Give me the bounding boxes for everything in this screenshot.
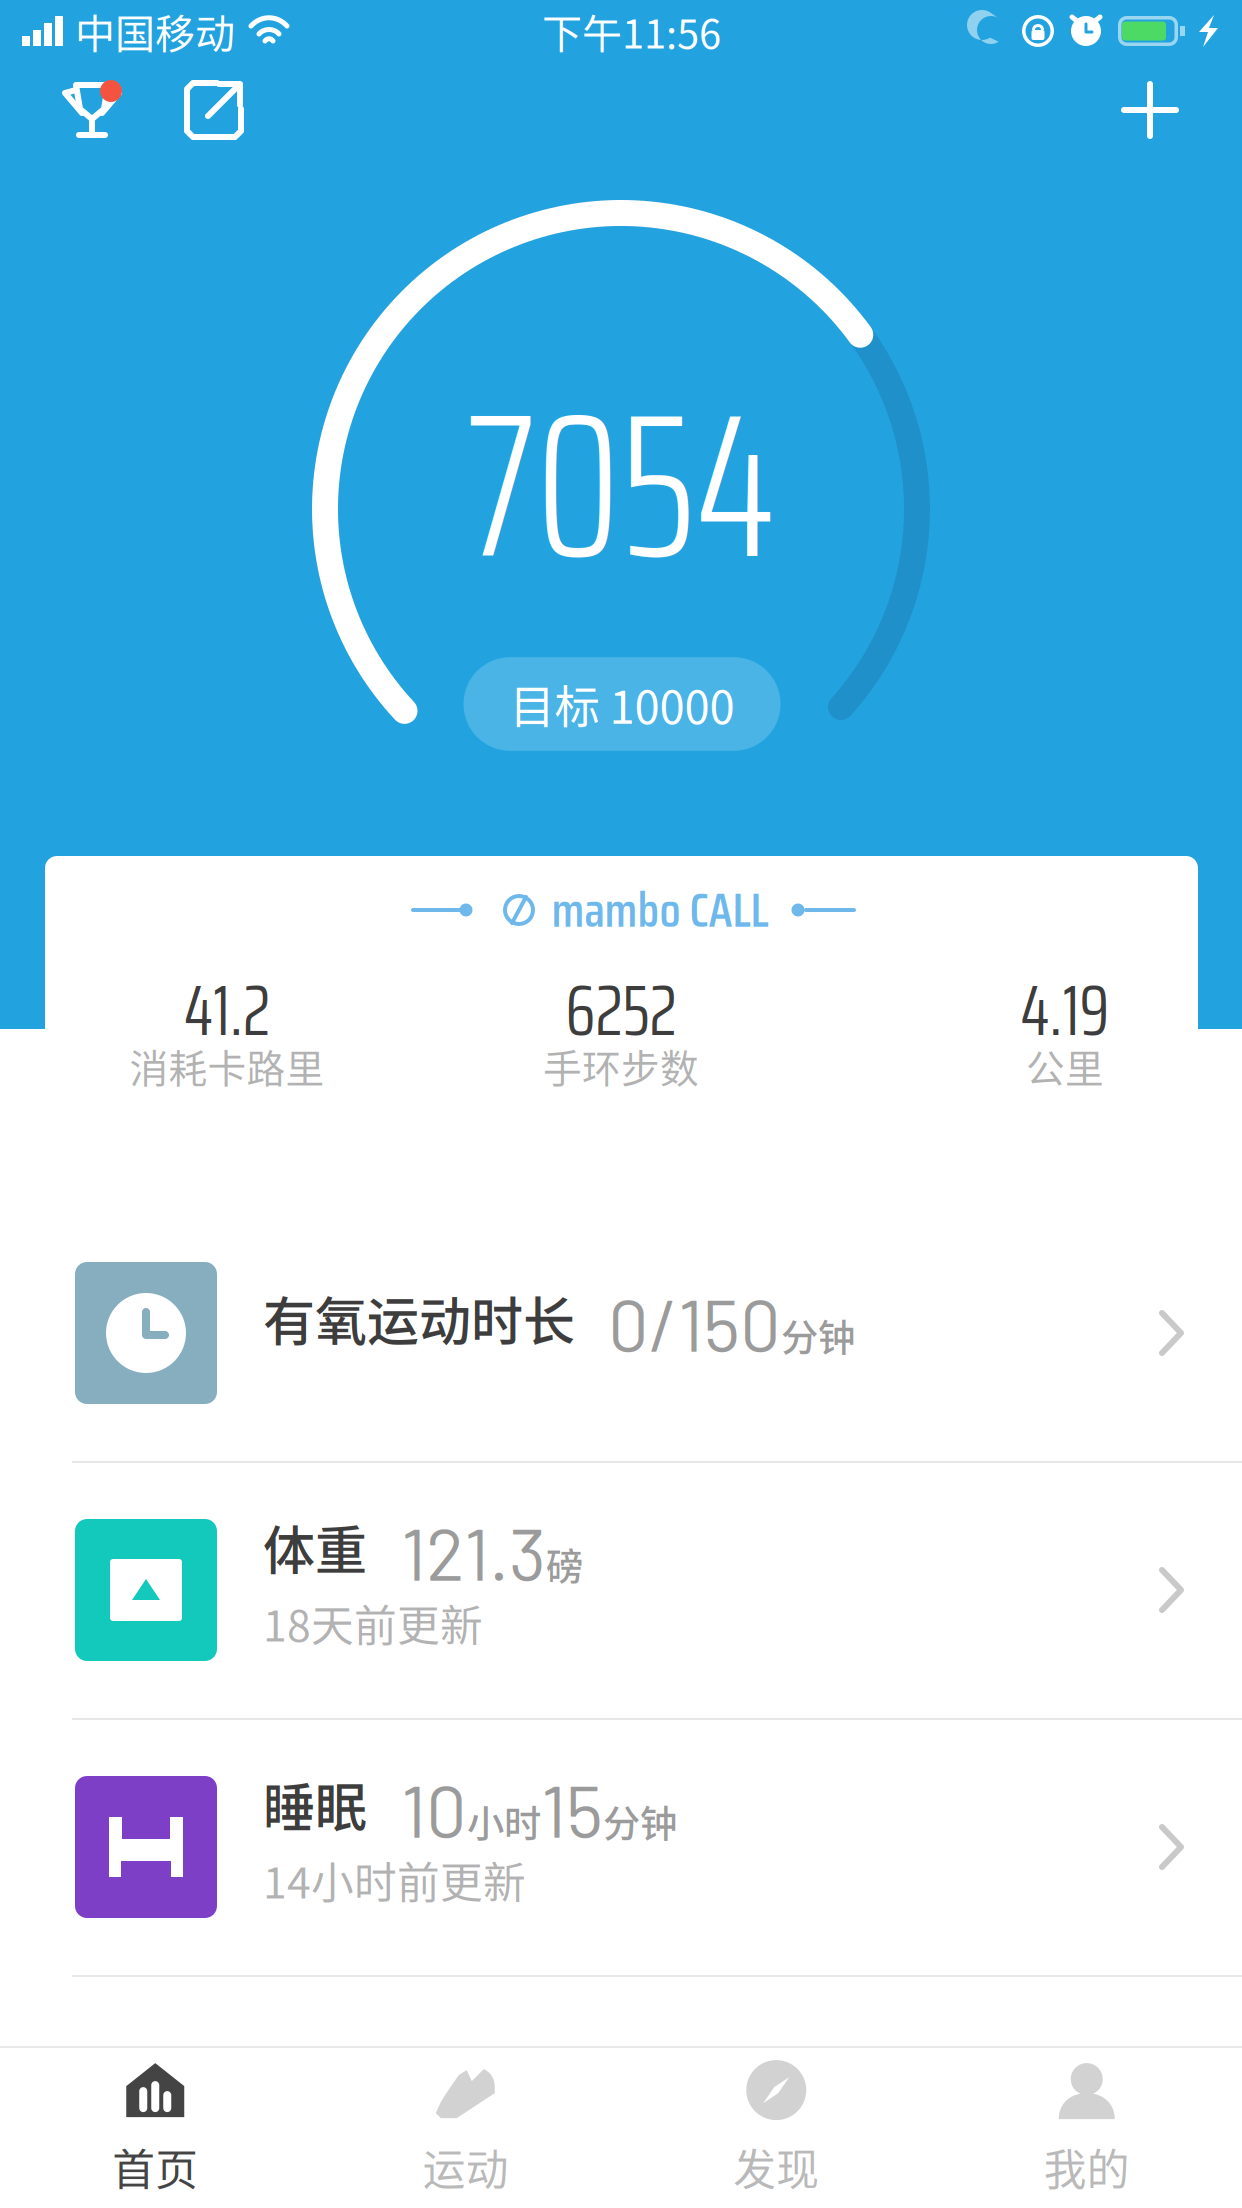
staticText: 18天前更新 <box>263 1592 483 1654</box>
staticText: 分钟 <box>781 1308 855 1363</box>
button[interactable]: Add <box>1102 62 1198 158</box>
staticText: mambo CALL <box>551 872 768 948</box>
staticText: 14小时前更新 <box>263 1849 526 1911</box>
staticText: 我的 <box>1044 2136 1130 2198</box>
staticText: 41.2 <box>184 953 270 1067</box>
button[interactable]: 我的 <box>931 2048 1242 2208</box>
staticText: 下午11:56 <box>542 2 721 60</box>
staticText: 首页 <box>112 2136 198 2198</box>
staticText: 小时 <box>467 1794 541 1849</box>
staticText: 手环步数 <box>543 1038 699 1094</box>
staticText: 磅 <box>546 1537 583 1592</box>
staticText: 15 <box>541 1766 603 1852</box>
staticText: 分钟 <box>603 1794 677 1849</box>
button[interactable]: 发现 <box>621 2048 931 2208</box>
staticText: 公里 <box>1026 1038 1104 1094</box>
button[interactable]: 运动 <box>310 2048 621 2208</box>
staticText: 6252 <box>565 953 676 1067</box>
button[interactable]: Share <box>166 62 262 158</box>
staticText: 0/150 <box>608 1280 781 1366</box>
staticText: 睡眠 <box>263 1766 367 1842</box>
staticText: 10 <box>401 1766 467 1852</box>
staticText: 7054 <box>466 325 775 644</box>
button[interactable]: Achievements <box>44 62 140 158</box>
staticText: 目标 10000 <box>509 671 734 737</box>
staticText: 消耗卡路里 <box>129 1038 324 1094</box>
button[interactable]: 体重 <box>0 1463 1242 1718</box>
staticText: 有氧运动时长 <box>263 1280 575 1356</box>
staticText: 发现 <box>733 2136 819 2198</box>
button[interactable]: 有氧运动时长 <box>0 1206 1242 1461</box>
staticText: 4.19 <box>1020 953 1109 1067</box>
staticText: 121.3 <box>401 1509 546 1595</box>
button[interactable]: 睡眠 <box>0 1720 1242 1975</box>
staticText: 体重 <box>263 1509 367 1585</box>
staticText: 中国移动 <box>75 2 235 60</box>
button[interactable]: 首页 <box>0 2048 310 2208</box>
staticText: 运动 <box>423 2136 509 2198</box>
